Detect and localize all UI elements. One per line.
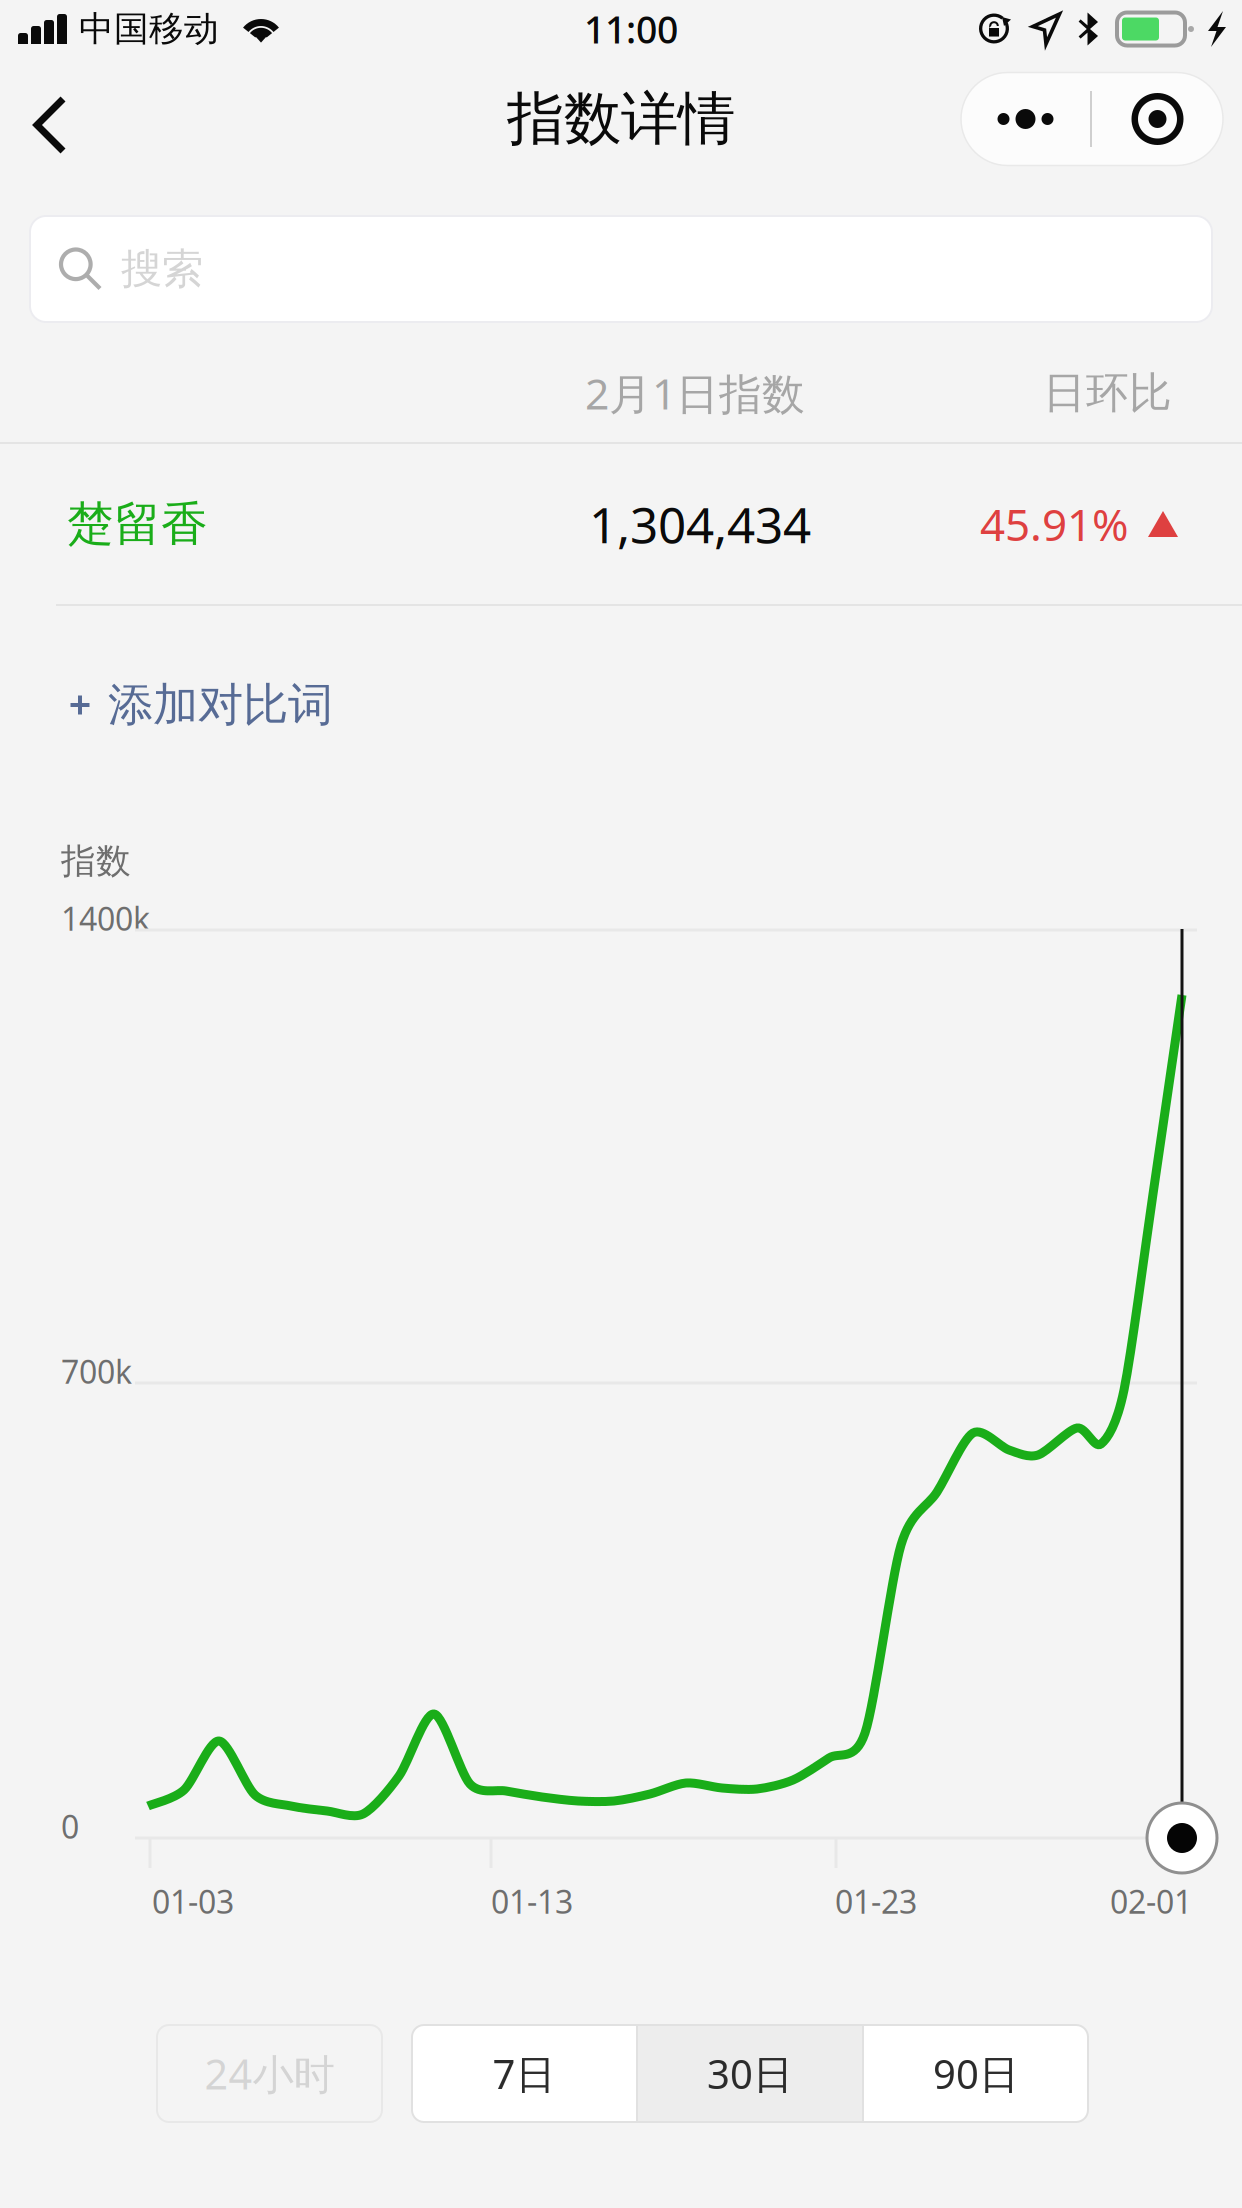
button[interactable]: 返回 xyxy=(14,69,86,169)
staticText: 日环比 xyxy=(1043,367,1172,419)
staticText: 搜索 xyxy=(121,244,203,294)
staticText: 中国移动 xyxy=(79,8,219,50)
button[interactable]: 30日 xyxy=(638,2025,862,2122)
staticText: 2月1日指数 xyxy=(585,365,805,421)
staticText: 45.91% xyxy=(980,495,1129,553)
staticText: 1,304,434 xyxy=(589,491,811,557)
staticText: 01-23 xyxy=(835,1880,917,1922)
staticText: 7日 xyxy=(492,2047,555,2100)
staticText: 01-13 xyxy=(491,1880,573,1922)
staticText: 指数详情 xyxy=(507,84,735,154)
staticText: 楚留香 xyxy=(67,495,208,553)
button[interactable]: 添加对比词 xyxy=(0,668,1242,742)
staticText: 30日 xyxy=(707,2047,793,2100)
staticText: 添加对比词 xyxy=(108,677,333,733)
staticText: 指数 xyxy=(61,840,131,883)
staticText: 700k xyxy=(61,1350,132,1392)
button[interactable]: 7日 xyxy=(412,2025,636,2122)
button[interactable]: 24小时 xyxy=(157,2025,382,2122)
staticText: 11:00 xyxy=(584,4,678,54)
button[interactable]: 搜索 xyxy=(30,216,1212,322)
staticText: 0 xyxy=(61,1805,79,1847)
button[interactable]: 关闭 xyxy=(1092,72,1223,165)
staticText: 02-01 xyxy=(1110,1880,1192,1922)
staticText: 24小时 xyxy=(204,2046,334,2101)
button[interactable]: 90日 xyxy=(864,2025,1088,2122)
button[interactable]: 更多 xyxy=(961,72,1090,165)
staticText: 01-03 xyxy=(152,1880,234,1922)
staticText: 90日 xyxy=(933,2047,1019,2100)
staticText: 1400k xyxy=(61,897,150,939)
